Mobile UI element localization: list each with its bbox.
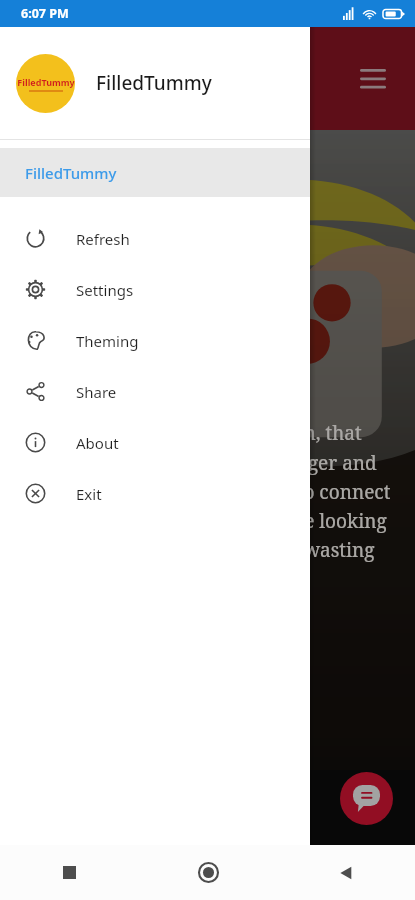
button[interactable]: Chat [340, 772, 393, 825]
staticText: 6:07 PM [21, 5, 69, 22]
staticText: FilledTummy [17, 76, 75, 88]
button[interactable]: Open navigation menu [351, 57, 395, 101]
button[interactable]: About [0, 417, 310, 468]
button[interactable]: Back [277, 845, 415, 900]
staticText: FilledTummy [96, 70, 212, 96]
staticText: Settings [76, 280, 134, 300]
staticText: Refresh [76, 229, 130, 249]
staticText: Share [76, 382, 117, 402]
staticText: FilledTummy [25, 163, 117, 183]
button[interactable]: Exit [0, 468, 310, 519]
staticText: Exit [76, 484, 102, 504]
button[interactable]: Theming [0, 315, 310, 366]
button[interactable]: FilledTummy [0, 27, 310, 139]
staticText: Theming [76, 331, 139, 351]
staticText: We are a non-profit organisation, that b… [20, 420, 395, 591]
button[interactable]: Settings [0, 264, 310, 315]
button[interactable]: Share [0, 366, 310, 417]
button[interactable]: FilledTummy [0, 148, 310, 197]
button[interactable]: Recent apps [0, 845, 139, 900]
staticText: About [76, 433, 119, 453]
button[interactable]: Home [139, 845, 277, 900]
staticText: Welcome to FilledTummy [20, 310, 237, 398]
button[interactable]: Refresh [0, 213, 310, 264]
